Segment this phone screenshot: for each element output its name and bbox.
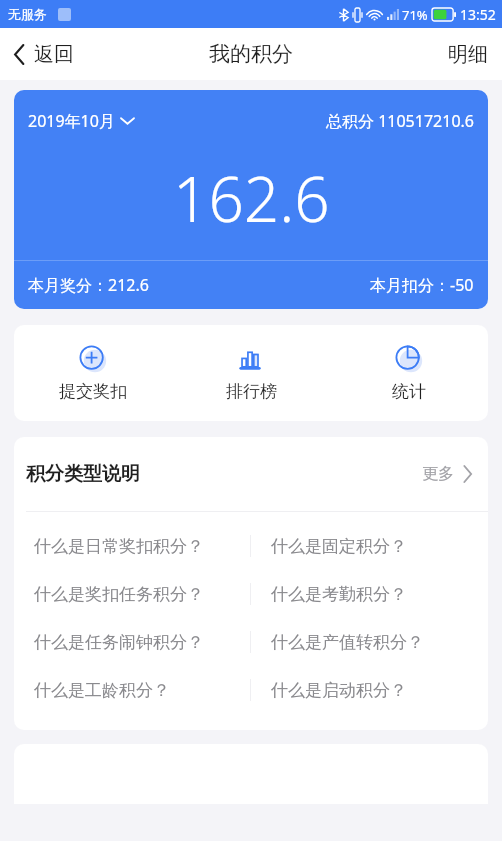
- button[interactable]: 什么是日常奖扣积分？: [14, 522, 250, 570]
- staticText: 提交奖扣: [59, 381, 127, 402]
- staticText: 13:52: [460, 5, 496, 24]
- button[interactable]: 返回: [0, 34, 88, 75]
- button[interactable]: 什么是任务闹钟积分？: [14, 618, 250, 666]
- staticText: 统计: [392, 381, 426, 402]
- button[interactable]: 什么是奖扣任务积分？: [14, 570, 250, 618]
- staticText: 什么是工龄积分？: [34, 680, 170, 701]
- button[interactable]: 提交奖扣: [14, 340, 172, 406]
- staticText: 什么是日常奖扣积分？: [34, 536, 204, 557]
- staticText: 什么是固定积分？: [271, 536, 407, 557]
- button[interactable]: 更多: [418, 456, 476, 492]
- staticText: 什么是启动积分？: [271, 680, 407, 701]
- staticText: 本月扣分：-50: [370, 274, 474, 296]
- staticText: 我的积分: [209, 41, 293, 67]
- staticText: 什么是考勤积分？: [271, 584, 407, 605]
- button[interactable]: 什么是考勤积分？: [251, 570, 488, 618]
- staticText: 2019年10月: [28, 110, 115, 132]
- staticText: 什么是任务闹钟积分？: [34, 632, 204, 653]
- staticText: 162.6: [173, 156, 330, 240]
- button[interactable]: 什么是固定积分？: [251, 522, 488, 570]
- staticText: 积分类型说明: [26, 462, 140, 486]
- staticText: 什么是奖扣任务积分？: [34, 584, 204, 605]
- staticText: 什么是产值转积分？: [271, 632, 424, 653]
- staticText: 无服务: [8, 6, 47, 22]
- button[interactable]: 2019年10月: [28, 106, 134, 136]
- button[interactable]: 排行榜: [172, 340, 330, 406]
- staticText: 总积分 110517210.6: [326, 110, 474, 132]
- button[interactable]: 什么是产值转积分？: [251, 618, 488, 666]
- staticText: 更多: [422, 464, 454, 484]
- button[interactable]: 什么是工龄积分？: [14, 666, 250, 714]
- button[interactable]: 统计: [330, 340, 488, 406]
- button[interactable]: 明细: [434, 32, 502, 77]
- button[interactable]: 什么是启动积分？: [251, 666, 488, 714]
- staticText: 排行榜: [226, 381, 277, 402]
- staticText: 71%: [402, 6, 428, 24]
- staticText: 本月奖分：212.6: [28, 274, 149, 296]
- staticText: 返回: [34, 42, 74, 67]
